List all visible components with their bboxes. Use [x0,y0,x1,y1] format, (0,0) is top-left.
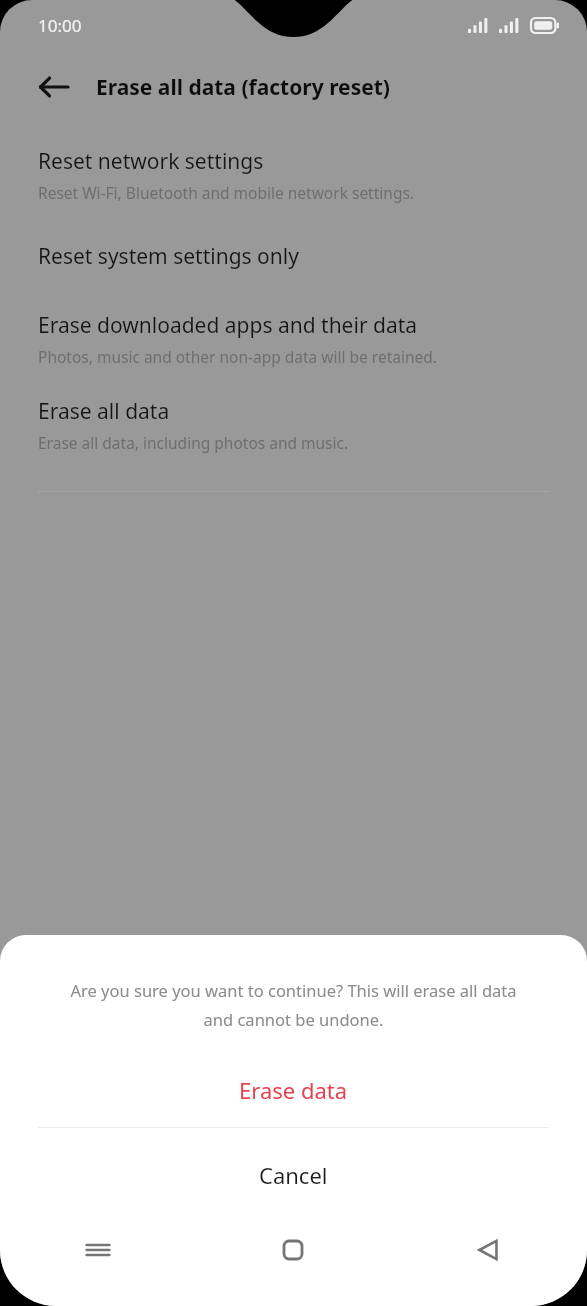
button[interactable]: Recent apps [0,1222,195,1277]
staticText: Cancel [259,1160,328,1190]
button[interactable]: Reset system settings only [0,241,587,272]
staticText: Reset Wi-Fi, Bluetooth and mobile networ… [38,182,415,203]
staticText: Erase all data [38,397,170,426]
staticText: Erase downloaded apps and their data [38,311,418,340]
button[interactable]: Back [28,61,80,113]
staticText: Are you sure you want to continue? This … [62,979,525,1031]
button[interactable]: Reset network settings [0,146,587,204]
staticText: Erase data [239,1075,348,1105]
button[interactable]: Home [195,1222,391,1277]
staticText: Erase all data (factory reset) [96,73,390,102]
staticText: Erase all data, including photos and mus… [38,432,349,453]
staticText: Reset system settings only [38,242,299,271]
button[interactable]: Cancel [0,1128,587,1222]
button[interactable]: Erase all data [0,396,587,454]
button[interactable]: Back [391,1222,587,1277]
staticText: Reset network settings [38,147,264,176]
staticText: Photos, music and other non-app data wil… [38,346,437,367]
staticText: 10:00 [38,14,82,37]
button[interactable]: Erase data [0,1061,587,1119]
button[interactable]: Erase downloaded apps and their data [0,310,587,368]
